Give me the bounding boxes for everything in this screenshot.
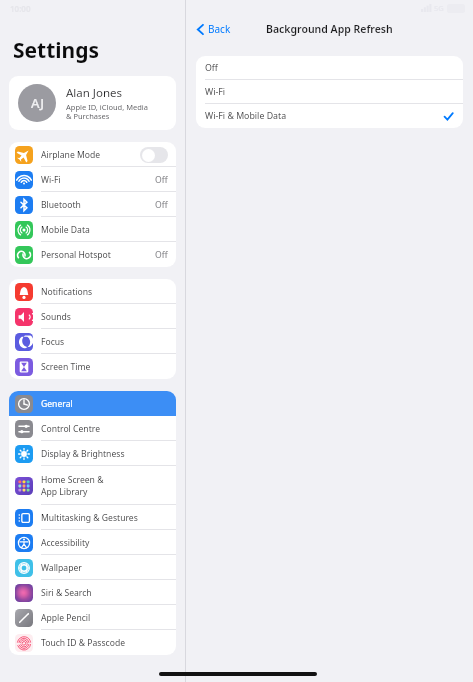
- staticText: Display & Brightness: [41, 448, 168, 460]
- button[interactable]: Home Screen & App Library: [9, 466, 176, 505]
- staticText: Apple Pencil: [41, 612, 168, 624]
- staticText: Apple ID, iCloud, Media & Purchases: [66, 102, 148, 122]
- staticText: 5G: [434, 3, 444, 13]
- staticText: Off: [155, 249, 168, 261]
- staticText: Off: [205, 62, 454, 74]
- staticText: Wi-Fi & Mobile Data: [205, 110, 443, 122]
- button[interactable]: Off: [196, 56, 463, 80]
- staticText: Off: [155, 199, 168, 211]
- staticText: Home Screen & App Library: [41, 474, 168, 497]
- staticText: Personal Hotspot: [41, 249, 155, 261]
- staticText: Bluetooth: [41, 199, 155, 211]
- staticText: Multitasking & Gestures: [41, 512, 168, 524]
- button[interactable]: AJ: [9, 76, 176, 130]
- staticText: Focus: [41, 336, 168, 348]
- staticText: Background App Refresh: [266, 22, 393, 36]
- staticText: Accessibility: [41, 537, 168, 549]
- button[interactable]: Control Centre: [9, 416, 176, 441]
- staticText: Airplane Mode: [41, 149, 140, 161]
- button[interactable]: Accessibility: [9, 530, 176, 555]
- button[interactable]: Back: [195, 20, 233, 38]
- staticText: Siri & Search: [41, 587, 168, 599]
- staticText: AJ: [31, 94, 44, 112]
- staticText: Back: [208, 22, 231, 36]
- staticText: Wallpaper: [41, 562, 168, 574]
- staticText: Alan Jones: [66, 85, 123, 101]
- button[interactable]: Mobile Data: [9, 217, 176, 242]
- staticText: Touch ID & Passcode: [41, 637, 168, 649]
- staticText: Wi-Fi: [41, 174, 155, 186]
- button[interactable]: Multitasking & Gestures: [9, 505, 176, 530]
- button[interactable]: Airplane Mode toggle: [140, 147, 168, 163]
- button[interactable]: Sounds: [9, 304, 176, 329]
- button[interactable]: General: [9, 391, 176, 416]
- button[interactable]: Touch ID & Passcode: [9, 630, 176, 655]
- staticText: Mobile Data: [41, 224, 168, 236]
- staticText: Off: [155, 174, 168, 186]
- button[interactable]: Siri & Search: [9, 580, 176, 605]
- staticText: Wi-Fi: [205, 86, 454, 98]
- button[interactable]: Screen Time: [9, 354, 176, 379]
- button[interactable]: Display & Brightness: [9, 441, 176, 466]
- button[interactable]: Wi-Fi: [196, 80, 463, 104]
- button[interactable]: Airplane Mode: [9, 142, 176, 167]
- staticText: 10:00: [10, 3, 31, 14]
- button[interactable]: Notifications: [9, 279, 176, 304]
- button[interactable]: Wi-Fi: [9, 167, 176, 192]
- staticText: General: [41, 398, 168, 410]
- staticText: Settings: [13, 36, 100, 65]
- staticText: Notifications: [41, 286, 168, 298]
- button[interactable]: Focus: [9, 329, 176, 354]
- button[interactable]: Wallpaper: [9, 555, 176, 580]
- staticText: Screen Time: [41, 361, 168, 373]
- button[interactable]: Wi-Fi & Mobile Data: [196, 104, 463, 128]
- button[interactable]: Apple Pencil: [9, 605, 176, 630]
- staticText: Control Centre: [41, 423, 168, 435]
- staticText: Sounds: [41, 311, 168, 323]
- button[interactable]: Bluetooth: [9, 192, 176, 217]
- button[interactable]: Personal Hotspot: [9, 242, 176, 267]
